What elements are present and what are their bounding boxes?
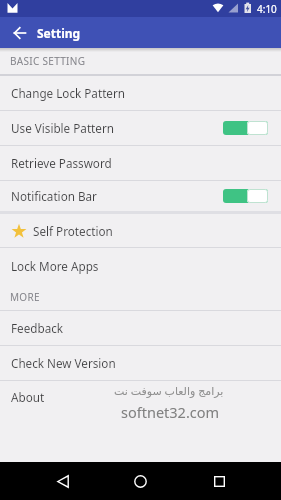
staticText: Notification Bar [11, 188, 97, 204]
button[interactable]: Notification Bar [0, 181, 281, 211]
button[interactable] [4, 17, 35, 48]
button[interactable]: Check New Version [0, 346, 281, 380]
staticText: Self Protection [33, 223, 113, 239]
staticText: softnet32.com [121, 402, 220, 422]
button[interactable]: Change Lock Pattern [0, 76, 281, 110]
button[interactable]: Self Protection [0, 214, 281, 247]
staticText: Lock More Apps [11, 258, 99, 274]
staticText: Retrieve Password [11, 155, 112, 171]
staticText: About [11, 389, 45, 405]
button[interactable] [128, 469, 152, 493]
staticText: Change Lock Pattern [11, 85, 126, 101]
button[interactable] [207, 469, 231, 493]
button[interactable]: Feedback [0, 311, 281, 345]
button[interactable]: Retrieve Password [0, 146, 281, 180]
button[interactable]: Lock More Apps [0, 248, 281, 283]
staticText: Use Visible Pattern [11, 120, 114, 136]
button[interactable]: About [0, 381, 281, 412]
button[interactable] [51, 469, 75, 493]
staticText: Setting [37, 25, 81, 41]
staticText: 4:10 [257, 2, 277, 16]
staticText: Check New Version [11, 355, 116, 371]
staticText: BASIC SETTING [10, 54, 86, 68]
staticText: Feedback [11, 320, 64, 336]
button[interactable]: Use Visible Pattern [0, 111, 281, 145]
staticText: MORE [10, 290, 40, 304]
staticText: برامج والعاب سوفت نت [114, 383, 224, 398]
